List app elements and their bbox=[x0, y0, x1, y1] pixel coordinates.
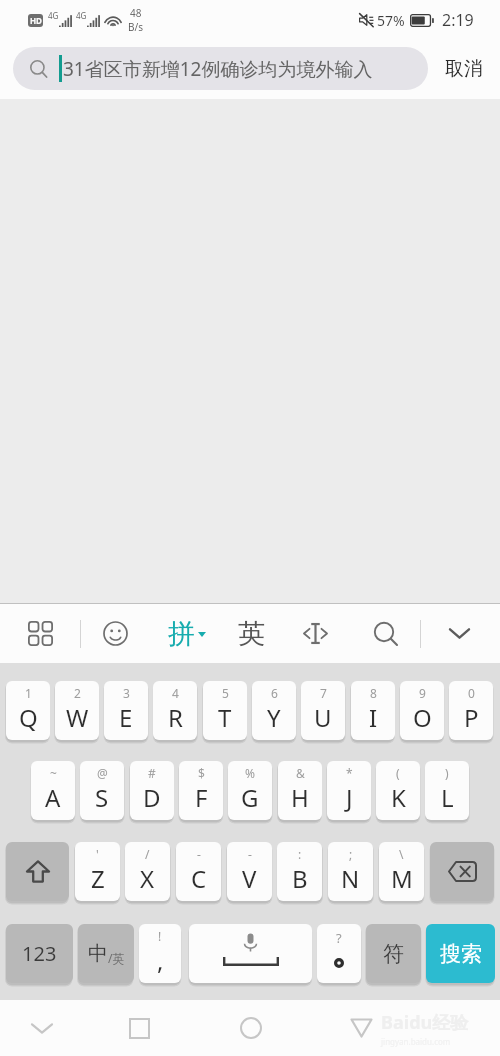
button[interactable]: 8 bbox=[351, 681, 395, 740]
button[interactable]: 7 bbox=[301, 681, 345, 740]
button[interactable]: / bbox=[125, 842, 170, 901]
staticText: N bbox=[341, 862, 360, 895]
staticText: 5 bbox=[222, 685, 229, 701]
staticText: ? bbox=[336, 929, 342, 947]
staticText: 2 bbox=[74, 685, 81, 701]
button[interactable]: ! bbox=[139, 924, 181, 983]
button[interactable]: 符 bbox=[366, 924, 421, 983]
staticText: @ bbox=[97, 765, 108, 781]
button[interactable]: 2 bbox=[55, 681, 99, 740]
staticText: ( bbox=[396, 765, 400, 781]
staticText: D bbox=[143, 781, 161, 814]
staticText: 57% bbox=[377, 11, 405, 30]
staticText: ~ bbox=[50, 765, 57, 781]
staticText: E bbox=[119, 701, 133, 734]
button[interactable]: 4 bbox=[153, 681, 197, 740]
button[interactable]: 英 bbox=[221, 604, 281, 663]
button[interactable]: 拼 bbox=[157, 604, 217, 663]
staticText: 取消 bbox=[445, 57, 483, 81]
button[interactable]: 0 bbox=[449, 681, 493, 740]
button[interactable]: Hide keyboard bbox=[429, 604, 489, 663]
button[interactable]: $ bbox=[179, 761, 223, 820]
staticText: V bbox=[242, 862, 257, 895]
staticText: 0 bbox=[468, 685, 475, 701]
staticText: X bbox=[140, 862, 155, 895]
staticText: 8 bbox=[370, 685, 377, 701]
button[interactable]: 9 bbox=[400, 681, 444, 740]
button[interactable]: Delete bbox=[430, 842, 494, 901]
button[interactable]: Search bbox=[356, 604, 416, 663]
button[interactable]: # bbox=[130, 761, 174, 820]
button[interactable]: 1 bbox=[6, 681, 50, 740]
staticText: 4 bbox=[172, 685, 179, 701]
staticText: ' bbox=[96, 846, 99, 862]
staticText: B bbox=[292, 862, 308, 895]
button[interactable]: Period bbox=[317, 924, 361, 983]
staticText: T bbox=[218, 701, 232, 734]
staticText: * bbox=[346, 765, 353, 781]
button[interactable]: % bbox=[228, 761, 272, 820]
button[interactable]: 3 bbox=[104, 681, 148, 740]
button[interactable]: Space bbox=[189, 924, 312, 983]
staticText: U bbox=[314, 701, 332, 734]
staticText: O bbox=[413, 701, 432, 734]
staticText: 2:19 bbox=[442, 9, 474, 31]
button[interactable]: & bbox=[278, 761, 322, 820]
staticText: I bbox=[369, 701, 378, 734]
staticText: R bbox=[168, 701, 183, 734]
button[interactable]: ) bbox=[425, 761, 469, 820]
staticText: HD bbox=[30, 15, 42, 26]
button[interactable]: Emoji bbox=[85, 604, 145, 663]
staticText: B/s bbox=[128, 20, 144, 34]
button[interactable]: Chinese / English toggle bbox=[78, 924, 134, 983]
button[interactable]: 31省区市新增12例确诊均为境外输入 bbox=[13, 47, 428, 90]
button[interactable]: ( bbox=[376, 761, 420, 820]
staticText: J bbox=[346, 781, 353, 814]
staticText: : bbox=[298, 846, 302, 862]
staticText: ! bbox=[158, 928, 162, 944]
button[interactable]: * bbox=[327, 761, 371, 820]
button[interactable]: 5 bbox=[203, 681, 247, 740]
staticText: 9 bbox=[419, 685, 426, 701]
button[interactable]: Hide keyboard bbox=[2, 1000, 82, 1056]
button[interactable]: @ bbox=[80, 761, 124, 820]
button[interactable]: - bbox=[176, 842, 221, 901]
staticText: $ bbox=[198, 765, 205, 781]
button[interactable]: 123 bbox=[6, 924, 73, 983]
staticText: jingyan.baidu.com bbox=[381, 1036, 451, 1047]
staticText: /英 bbox=[108, 950, 125, 966]
button[interactable]: Keyboard layouts bbox=[10, 604, 70, 663]
button[interactable]: \ bbox=[379, 842, 424, 901]
button[interactable]: - bbox=[227, 842, 272, 901]
button[interactable]: Home bbox=[211, 1000, 291, 1056]
staticText: 4G bbox=[76, 10, 87, 21]
staticText: 搜索 bbox=[440, 941, 482, 967]
staticText: 符 bbox=[383, 941, 404, 967]
button[interactable]: 6 bbox=[252, 681, 296, 740]
staticText: M bbox=[391, 862, 413, 895]
staticText: 拼 bbox=[168, 617, 195, 651]
button[interactable]: ~ bbox=[31, 761, 75, 820]
staticText: , bbox=[157, 944, 164, 977]
staticText: P bbox=[464, 701, 479, 734]
button[interactable]: Move cursor bbox=[285, 604, 345, 663]
staticText: F bbox=[195, 781, 208, 814]
staticText: - bbox=[248, 846, 252, 862]
button[interactable]: ; bbox=[328, 842, 373, 901]
staticText: ; bbox=[349, 846, 353, 862]
staticText: Q bbox=[19, 701, 38, 734]
staticText: 3 bbox=[123, 685, 130, 701]
staticText: 31省区市新增12例确诊均为境外输入 bbox=[63, 56, 373, 82]
staticText: K bbox=[391, 781, 406, 814]
button[interactable]: Back bbox=[321, 1000, 401, 1056]
button[interactable]: Shift bbox=[6, 842, 69, 901]
button[interactable]: Recents bbox=[99, 1000, 179, 1056]
staticText: Z bbox=[91, 862, 105, 895]
button[interactable]: 搜索 bbox=[426, 924, 495, 983]
button[interactable]: ' bbox=[75, 842, 120, 901]
staticText: \ bbox=[399, 846, 404, 862]
button[interactable]: : bbox=[277, 842, 322, 901]
staticText: ) bbox=[445, 765, 449, 781]
staticText: % bbox=[245, 765, 255, 781]
button[interactable]: 取消 bbox=[428, 47, 500, 90]
